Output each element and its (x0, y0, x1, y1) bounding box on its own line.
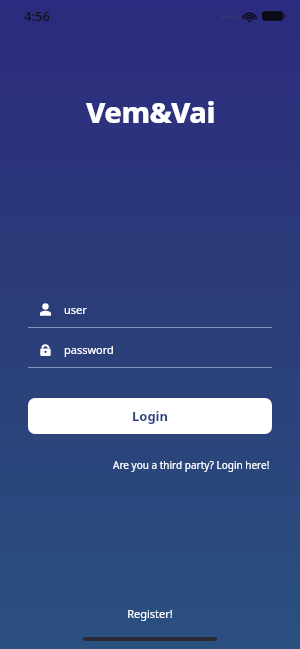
button[interactable]: Are you a third party? Login here! (111, 456, 272, 474)
staticText: Vem&Vai (86, 92, 215, 131)
button[interactable]: Register! (117, 602, 183, 625)
other: Password (38, 342, 53, 357)
staticText: Register! (127, 606, 173, 621)
button[interactable]: Login (28, 398, 272, 434)
staticText: user (64, 302, 87, 317)
staticText: 4:56 (24, 7, 50, 25)
staticText: password (64, 342, 114, 357)
staticText: Are you a third party? Login here! (113, 458, 270, 472)
other: User (38, 302, 53, 317)
button[interactable]: Password (28, 338, 272, 360)
button[interactable]: User (28, 298, 272, 320)
staticText: Login (132, 407, 168, 425)
